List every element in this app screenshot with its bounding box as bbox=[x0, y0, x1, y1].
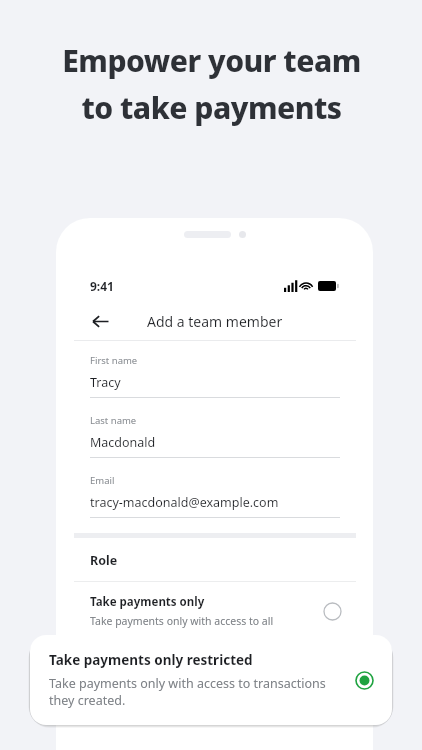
staticText: Role bbox=[90, 552, 118, 569]
staticText: Take payments only restricted bbox=[49, 651, 253, 669]
button[interactable]: Take payments only restricted bbox=[30, 635, 392, 725]
staticText: to take payments bbox=[81, 87, 342, 128]
staticText: Take payments only bbox=[90, 594, 205, 610]
staticText: Tracy bbox=[90, 374, 121, 391]
button[interactable]: Email bbox=[74, 474, 356, 518]
staticText: Empower your team bbox=[62, 40, 361, 81]
staticText: Email bbox=[90, 474, 115, 487]
button[interactable]: Take payments only bbox=[74, 594, 356, 628]
staticText: Take payments only with access to transa… bbox=[49, 675, 343, 709]
staticText: Macdonald bbox=[90, 434, 156, 451]
staticText: First name bbox=[90, 354, 138, 367]
button[interactable]: Last name bbox=[74, 414, 356, 458]
staticText: Take payments only with access to all bbox=[90, 614, 274, 628]
button[interactable]: First name bbox=[74, 354, 356, 398]
staticText: Last name bbox=[90, 414, 137, 427]
staticText: Add a team member bbox=[147, 312, 283, 331]
staticText: 9:41 bbox=[90, 278, 114, 294]
staticText: tracy-macdonald@example.com bbox=[90, 494, 279, 511]
button[interactable]: Back bbox=[84, 305, 116, 337]
